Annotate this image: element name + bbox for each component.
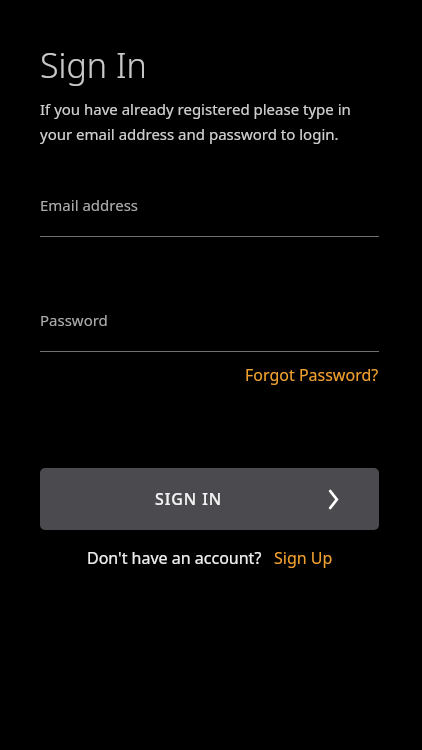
staticText: Don't have an account? [87, 547, 262, 569]
staticText: Sign In [40, 42, 147, 88]
button[interactable]: Forgot Password? [245, 364, 379, 386]
staticText: SIGN IN [155, 488, 223, 510]
staticText: Forgot Password? [245, 364, 379, 386]
staticText: Email address [40, 195, 139, 215]
staticText: If you have already registered please ty… [40, 99, 351, 144]
button[interactable]: Password [40, 310, 379, 352]
button[interactable]: SIGN IN [40, 468, 379, 530]
staticText: Sign Up [274, 547, 333, 569]
button[interactable]: Sign Up [274, 547, 333, 569]
button[interactable]: Email address [40, 195, 379, 237]
staticText: Password [40, 310, 108, 330]
